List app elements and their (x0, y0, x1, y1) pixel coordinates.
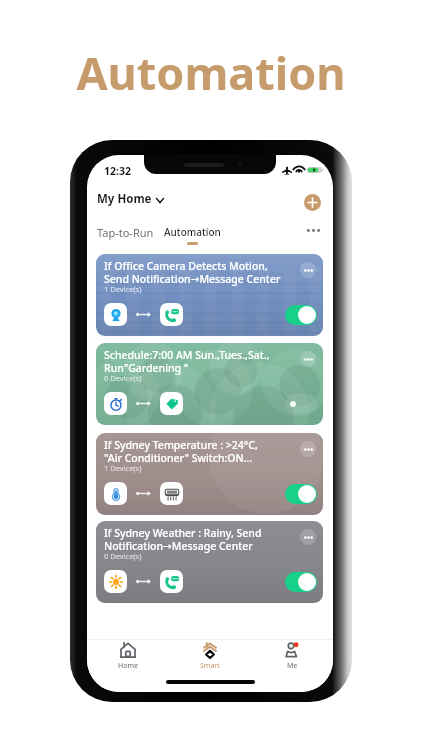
button[interactable]: Toggle automation (285, 305, 317, 325)
button[interactable]: Card options (300, 351, 316, 367)
staticText: 0 Device(s) (104, 551, 142, 561)
button[interactable]: Toggle automation (285, 484, 317, 504)
button[interactable]: If Sydney Temperature : >24°C, "Air Cond… (96, 433, 323, 515)
button[interactable]: Automation (159, 221, 226, 249)
staticText: Home (118, 661, 138, 671)
button[interactable]: Toggle automation (285, 572, 317, 592)
staticText: 0 Device(s) (104, 373, 142, 383)
staticText: Tap-to-Run (97, 225, 154, 240)
staticText: My Home (97, 191, 152, 207)
staticText: Me (287, 661, 298, 671)
button[interactable]: Card options (300, 262, 316, 278)
button[interactable]: Me (251, 640, 333, 673)
button[interactable]: Card options (300, 529, 316, 545)
button[interactable]: Card options (300, 441, 316, 457)
button[interactable]: My Home (97, 191, 164, 207)
staticText: If Sydney Temperature : >24°C, "Air Cond… (104, 438, 304, 465)
button[interactable]: Add automation (304, 194, 321, 211)
button[interactable]: Tap-to-Run (92, 221, 159, 244)
staticText: 12:32 (104, 164, 131, 178)
button[interactable]: Smart (169, 640, 251, 673)
staticText: Automation (0, 42, 422, 103)
button[interactable]: Toggle automation (285, 394, 317, 414)
button[interactable]: If Office Camera Detects Motion, Send No… (96, 254, 323, 336)
staticText: Smart (200, 661, 220, 671)
button[interactable]: More options (305, 222, 321, 238)
staticText: If Office Camera Detects Motion, Send No… (104, 259, 304, 286)
staticText: 1 Device(s) (104, 284, 142, 294)
button[interactable]: Home (87, 640, 169, 673)
staticText: 1 Device(s) (104, 463, 142, 473)
button[interactable]: Schedule:7:00 AM Sun.,Tues.,Sat., Run"Ga… (96, 343, 323, 425)
staticText: Automation (164, 225, 221, 239)
button[interactable]: If Sydney Weather : Rainy, Send Notifica… (96, 521, 323, 603)
staticText: Schedule:7:00 AM Sun.,Tues.,Sat., Run"Ga… (104, 348, 304, 375)
staticText: If Sydney Weather : Rainy, Send Notifica… (104, 526, 304, 553)
